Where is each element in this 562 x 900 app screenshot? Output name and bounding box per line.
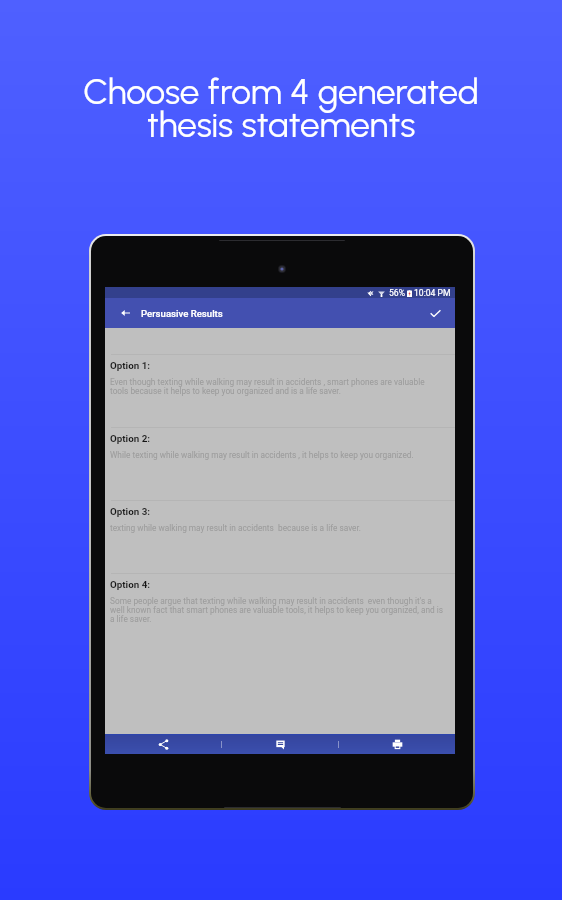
staticText: 56% bbox=[389, 288, 405, 298]
staticText: Some people argue that texting while wal… bbox=[110, 596, 444, 624]
button[interactable]: Comment bbox=[222, 734, 338, 754]
staticText: Option 4: bbox=[110, 579, 151, 590]
button[interactable]: Option 3: bbox=[105, 500, 455, 573]
staticText: Even though texting while walking may re… bbox=[110, 377, 444, 396]
staticText: While texting while walking may result i… bbox=[110, 450, 414, 460]
staticText: texting while walking may result in acci… bbox=[110, 523, 362, 533]
button[interactable]: Back bbox=[105, 298, 455, 328]
button[interactable]: Print bbox=[339, 734, 455, 754]
staticText: Choose from 4 generated thesis statement… bbox=[83, 71, 479, 145]
staticText: Persuasive Results bbox=[141, 308, 223, 319]
button[interactable]: Done bbox=[426, 304, 444, 322]
staticText: Option 1: bbox=[110, 360, 151, 371]
staticText: 10:04 PM bbox=[414, 288, 451, 298]
staticText: Option 3: bbox=[110, 506, 151, 517]
button[interactable]: Option 2: bbox=[105, 427, 455, 500]
button[interactable]: Option 1: bbox=[105, 354, 455, 427]
button[interactable]: Share bbox=[105, 734, 221, 754]
button[interactable]: Back bbox=[116, 304, 134, 322]
button[interactable]: Option 4: bbox=[105, 573, 455, 646]
staticText: Option 2: bbox=[110, 433, 151, 444]
